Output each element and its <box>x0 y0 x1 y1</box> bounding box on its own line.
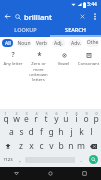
staticText: 1 <box>4 111 7 116</box>
button[interactable]: 7 <box>61 110 71 125</box>
staticText: s <box>19 126 24 138</box>
button[interactable]: Any letter <box>0 50 26 67</box>
staticText: l <box>90 126 93 138</box>
button[interactable]: LOOKUP <box>0 24 50 35</box>
button[interactable]: j <box>66 125 76 139</box>
button[interactable]: . <box>76 153 85 166</box>
staticText: t <box>44 113 48 125</box>
button[interactable]: SEARCH <box>50 24 101 35</box>
staticText: 3 <box>25 111 28 116</box>
button[interactable]: 3 <box>21 110 31 125</box>
staticText: 2 <box>15 111 18 116</box>
staticText: ?123 <box>3 157 13 163</box>
button[interactable]: l <box>86 125 96 139</box>
staticText: Noun <box>17 40 31 47</box>
staticText: q <box>3 113 9 125</box>
button[interactable]: Noun <box>17 39 31 47</box>
button[interactable]: 6 <box>51 110 61 125</box>
staticText: n <box>68 140 74 152</box>
button[interactable]: ?123 <box>0 153 15 166</box>
button[interactable]: All <box>2 39 13 47</box>
button[interactable]: n <box>66 139 76 153</box>
button[interactable]: Back <box>0 9 15 24</box>
button[interactable]: h <box>56 125 66 139</box>
button[interactable]: m <box>76 139 86 153</box>
staticText: 5 <box>45 111 48 116</box>
staticText: Zero or more unknown letters <box>26 61 51 82</box>
staticText: y <box>54 113 59 125</box>
button[interactable]: Home <box>33 167 67 180</box>
button[interactable]: Adv. <box>69 39 82 47</box>
staticText: brilliant <box>24 12 52 22</box>
staticText: Adj. <box>54 40 63 47</box>
staticText: i <box>75 113 78 125</box>
button[interactable]: Clear <box>76 10 89 23</box>
button[interactable]: 5 <box>41 110 51 125</box>
button[interactable]: k <box>76 125 86 139</box>
button[interactable]: d <box>26 125 36 139</box>
staticText: 9 <box>85 111 88 116</box>
staticText: a <box>9 126 14 138</box>
staticText: h <box>58 126 64 138</box>
staticText: All <box>5 40 11 47</box>
button[interactable]: Shift <box>0 139 16 153</box>
button[interactable]: v <box>46 139 56 153</box>
button[interactable]: Search <box>89 155 98 164</box>
button[interactable]: 0 <box>91 110 101 125</box>
button[interactable]: Recents <box>67 167 101 180</box>
button[interactable]: Verb <box>35 39 48 47</box>
staticText: 8 <box>75 111 78 116</box>
staticText: f <box>40 126 43 138</box>
staticText: , <box>19 156 21 164</box>
button[interactable]: , <box>15 153 24 166</box>
staticText: p <box>93 113 99 125</box>
staticText: Consonant <box>76 61 101 67</box>
staticText: z <box>19 140 23 152</box>
staticText: 3:44 <box>87 1 97 8</box>
staticText: 7 <box>65 111 68 116</box>
button[interactable]: 1 <box>0 110 11 125</box>
button[interactable]: a <box>6 125 16 139</box>
staticText: * <box>37 50 42 60</box>
button[interactable]: z <box>16 139 26 153</box>
button[interactable]: x <box>26 139 36 153</box>
staticText: u <box>63 113 69 125</box>
button[interactable]: 4 <box>31 110 41 125</box>
button[interactable]: More options <box>89 11 100 22</box>
button[interactable]: Zero or more unknown letters <box>26 50 51 82</box>
button[interactable]: c <box>36 139 46 153</box>
staticText: Any letter <box>0 61 26 67</box>
button[interactable]: Back <box>0 167 33 180</box>
staticText: SEARCH <box>65 26 86 33</box>
staticText: w <box>13 113 20 125</box>
staticText: . <box>80 156 82 164</box>
staticText: Adv. <box>71 40 81 47</box>
button[interactable]: 9 <box>81 110 91 125</box>
button[interactable]: 2 <box>11 110 21 125</box>
staticText: Verb <box>36 40 47 47</box>
staticText: 4 <box>35 111 38 116</box>
button[interactable]: b <box>56 139 66 153</box>
staticText: x <box>29 140 34 152</box>
button[interactable]: 8 <box>71 110 81 125</box>
button[interactable]: Adj. <box>52 39 65 47</box>
button[interactable]: s <box>16 125 26 139</box>
button[interactable]: g <box>46 125 56 139</box>
staticText: e <box>24 113 29 125</box>
staticText: r <box>34 113 38 125</box>
button[interactable]: f <box>36 125 46 139</box>
staticText: j <box>70 126 73 138</box>
staticText: o <box>83 113 89 125</box>
staticText: c <box>39 140 44 152</box>
button[interactable]: Consonant <box>76 50 101 67</box>
staticText: ? <box>11 50 15 60</box>
staticText: k <box>79 126 84 138</box>
staticText: g <box>48 126 54 138</box>
staticText: v <box>49 140 54 152</box>
button[interactable]: Backspace <box>86 139 101 153</box>
staticText: LOOKUP <box>14 26 37 33</box>
button[interactable]: Other <box>86 39 99 47</box>
button[interactable]: Vowel <box>51 50 76 67</box>
staticText: b <box>58 140 64 152</box>
